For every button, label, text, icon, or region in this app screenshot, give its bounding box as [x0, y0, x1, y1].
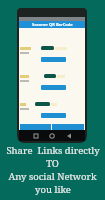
button[interactable] — [41, 113, 66, 118]
staticText: you like — [35, 183, 71, 196]
staticText: Share Links directly — [6, 144, 100, 157]
staticText: TO — [46, 157, 59, 170]
staticText: Scanner QR BarCode — [32, 22, 73, 27]
button[interactable] — [41, 85, 66, 90]
button[interactable]: Scanner QR BarCode — [19, 21, 85, 28]
button[interactable] — [41, 57, 66, 62]
staticText: Any social Network — [8, 170, 97, 183]
